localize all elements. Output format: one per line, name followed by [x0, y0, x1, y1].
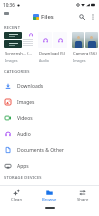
button[interactable]: Downloads — [0, 78, 99, 94]
button[interactable]: Browse — [33, 186, 66, 206]
staticText: RECENT — [4, 25, 21, 30]
button[interactable]: Download (5) — [37, 31, 68, 65]
staticText: Screensh... (20) — [5, 51, 34, 57]
staticText: Browse — [42, 197, 57, 203]
button[interactable]: Apps — [0, 158, 99, 174]
staticText: Videos — [17, 115, 33, 122]
staticText: Files — [41, 13, 54, 21]
button[interactable]: Videos — [0, 110, 99, 126]
button[interactable]: Audio — [0, 126, 99, 142]
staticText: STORAGE DEVICES — [4, 175, 42, 180]
staticText: Images — [73, 58, 86, 63]
button[interactable]: Camera (56) — [71, 31, 99, 65]
button[interactable]: More options — [87, 11, 98, 22]
staticText: Download (5) — [39, 51, 65, 57]
button[interactable]: Images — [0, 94, 99, 110]
staticText: Share — [77, 197, 89, 203]
staticText: Audio — [39, 58, 49, 63]
button[interactable]: Search — [76, 11, 87, 22]
staticText: Downloads — [17, 83, 44, 90]
staticText: CATEGORIES — [4, 69, 30, 74]
button[interactable]: Share — [66, 186, 99, 206]
staticText: Apps — [17, 163, 29, 170]
button[interactable]: Screensh... (20) — [3, 31, 34, 65]
staticText: Images — [5, 58, 18, 63]
staticText: Clean — [11, 197, 23, 203]
button[interactable]: Documents & Other — [0, 142, 99, 158]
staticText: Audio — [17, 131, 31, 138]
staticText: Camera (56) — [73, 51, 97, 57]
staticText: 10:36 — [3, 2, 15, 8]
staticText: Images — [17, 99, 35, 106]
staticText: Documents & Other — [17, 147, 64, 154]
button[interactable]: Clean — [0, 186, 33, 206]
